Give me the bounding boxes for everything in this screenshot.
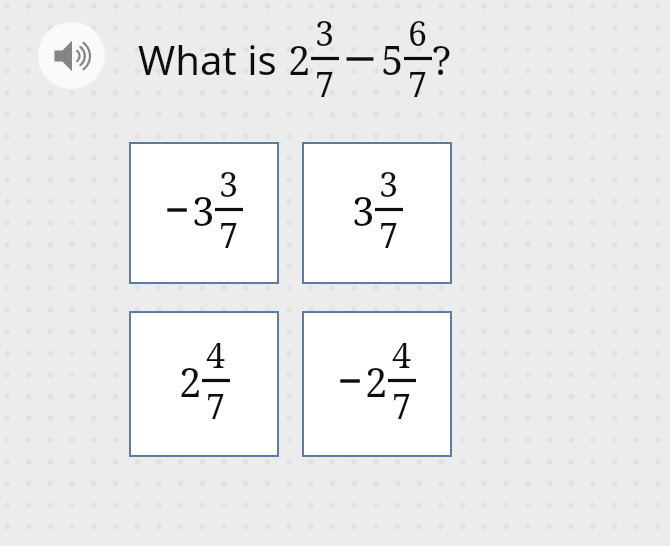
staticText: 3	[219, 161, 239, 207]
staticText: 7	[219, 212, 239, 258]
button[interactable]: Play audio	[38, 22, 105, 89]
staticText: 7	[379, 212, 399, 258]
button[interactable]: Answer 2 and 4 sevenths	[129, 311, 279, 457]
staticText: 7	[206, 383, 226, 429]
staticText: 3	[352, 183, 375, 237]
staticText: What is	[138, 32, 288, 86]
staticText: 4	[206, 332, 226, 378]
staticText: ?	[432, 32, 451, 86]
button[interactable]: Answer minus 2 and 4 sevenths	[302, 311, 452, 457]
staticText: 7	[408, 61, 428, 107]
staticText: 4	[392, 332, 412, 378]
staticText: 3	[192, 183, 215, 237]
staticText: 3	[315, 10, 335, 56]
staticText: 2	[179, 354, 202, 408]
button[interactable]: Answer 3 and 3 sevenths	[302, 142, 452, 284]
staticText: 3	[379, 161, 399, 207]
staticText: 7	[392, 383, 412, 429]
staticText: 2	[288, 32, 311, 86]
button[interactable]: Answer minus 3 and 3 sevenths	[129, 142, 279, 284]
staticText: 7	[315, 61, 335, 107]
staticText: 2	[365, 354, 388, 408]
staticText: 6	[408, 10, 428, 56]
staticText: 5	[381, 32, 404, 86]
